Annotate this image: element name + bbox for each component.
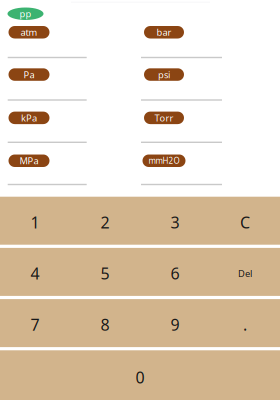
button[interactable]: 5 [70,248,140,296]
button[interactable]: 3 [140,197,210,245]
staticText: MPa [19,155,38,167]
button[interactable]: kPa [8,112,49,124]
staticText: 7 [30,314,39,335]
button[interactable]: Torr [144,112,184,124]
staticText: 4 [30,263,39,284]
staticText: kPa [21,112,37,124]
staticText: atm [20,26,37,38]
staticText: 9 [170,314,179,335]
button[interactable]: Del [210,248,280,296]
button[interactable]: 2 [70,197,140,245]
button[interactable]: C [210,197,280,245]
staticText: . [243,314,247,335]
button[interactable]: 8 [70,299,140,347]
staticText: Del [238,267,252,280]
button[interactable]: bar [144,26,184,38]
staticText: mmH2O [148,155,179,166]
button[interactable]: psi [144,68,184,81]
staticText: 3 [170,212,179,233]
button[interactable]: Pa [8,68,49,81]
button[interactable]: 7 [0,299,70,347]
staticText: 5 [100,263,109,284]
staticText: 1 [30,212,39,233]
staticText: Torr [154,112,173,124]
button[interactable]: 1 [0,197,70,245]
button[interactable]: . [210,299,280,347]
staticText: C [240,212,250,233]
button[interactable]: mmH2O [142,154,185,167]
staticText: Pa [23,68,34,81]
staticText: 2 [100,212,109,233]
staticText: pp [19,8,31,20]
button[interactable]: 6 [140,248,210,296]
button[interactable]: 0 [0,350,280,400]
button[interactable]: 4 [0,248,70,296]
staticText: 6 [170,263,179,284]
button[interactable]: atm [8,26,49,38]
button[interactable]: 9 [140,299,210,347]
staticText: psi [158,68,170,81]
staticText: 0 [135,367,144,388]
button[interactable]: MPa [8,154,49,167]
staticText: bar [156,26,171,38]
staticText: 8 [100,314,109,335]
